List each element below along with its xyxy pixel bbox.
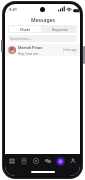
button[interactable]: Mariah Pinae	[5, 44, 80, 56]
button[interactable]: Requests	[42, 25, 77, 33]
button[interactable]: Library	[20, 157, 28, 165]
staticText: Chats	[20, 27, 30, 32]
staticText: 9:41	[9, 7, 17, 12]
button[interactable]: Messages	[44, 157, 52, 165]
staticText: Requests	[52, 27, 68, 32]
button[interactable]: Profile	[69, 157, 77, 165]
button[interactable]: Chats	[9, 26, 41, 32]
button[interactable]: Explore	[32, 157, 40, 165]
button[interactable]: Active profile	[56, 157, 65, 166]
staticText: Hey, how are...	[18, 51, 41, 55]
staticText: Search here...	[10, 36, 32, 41]
staticText: Mariah Pinae	[18, 45, 43, 50]
staticText: Messages	[31, 17, 55, 24]
button[interactable]: Search here...	[8, 35, 77, 42]
staticText: 2 min ago	[63, 48, 77, 52]
button[interactable]: Home	[8, 157, 16, 165]
